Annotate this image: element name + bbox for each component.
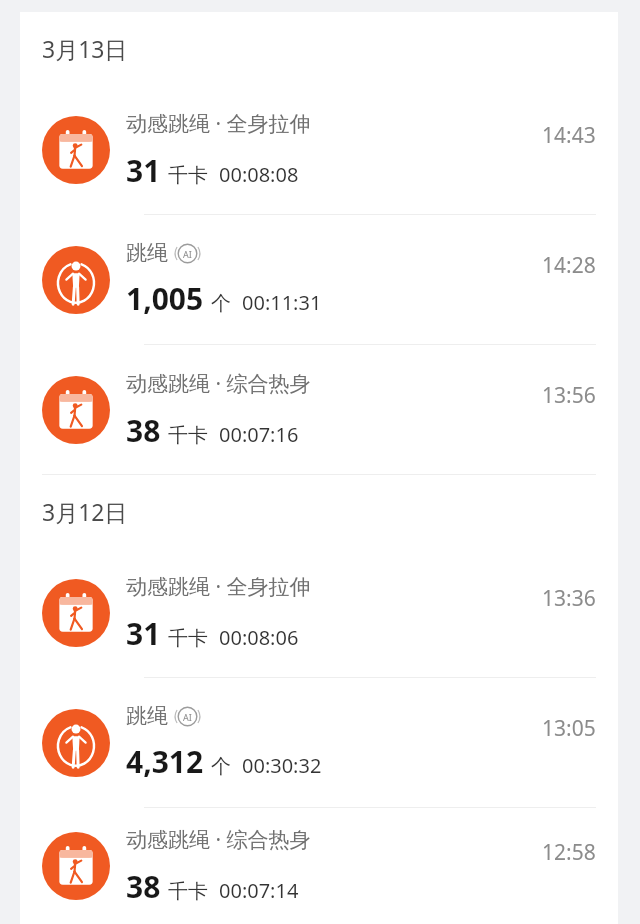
other: Workout — [42, 832, 110, 900]
other: Workout — [42, 579, 110, 647]
staticText: 个 — [211, 291, 231, 316]
staticText: 动感跳绳 · 综合热身 — [126, 825, 311, 854]
staticText: 00:11:31 — [242, 289, 322, 316]
button[interactable]: Workout — [20, 548, 618, 677]
staticText: 动感跳绳 · 综合热身 — [126, 369, 311, 398]
staticText: 千卡 — [168, 423, 208, 448]
staticText: 千卡 — [168, 626, 208, 651]
staticText: AI — [183, 711, 192, 723]
button[interactable]: Workout — [20, 85, 618, 214]
staticText: 00:08:06 — [219, 624, 299, 651]
other: Workout — [42, 116, 110, 184]
staticText: 13:36 — [542, 584, 596, 613]
other: Jump rope — [42, 709, 110, 777]
staticText: 3月13日 — [42, 33, 128, 64]
staticText: 00:07:14 — [219, 877, 299, 904]
staticText: 38 — [126, 866, 161, 907]
button[interactable]: Workout — [20, 808, 618, 924]
staticText: 个 — [211, 754, 231, 779]
button[interactable]: Jump rope — [20, 678, 618, 807]
staticText: 动感跳绳 · 全身拉伸 — [126, 572, 311, 601]
button[interactable]: Workout — [20, 345, 618, 474]
staticText: 14:28 — [542, 251, 596, 280]
staticText: 3月12日 — [42, 496, 128, 527]
staticText: 31 — [126, 150, 161, 191]
other: Jump rope — [42, 246, 110, 314]
staticText: 1,005 — [126, 278, 204, 319]
staticText: 跳绳 — [126, 240, 168, 266]
staticText: 31 — [126, 613, 161, 654]
staticText: 4,312 — [126, 741, 204, 782]
staticText: 00:07:16 — [219, 421, 299, 448]
staticText: 12:58 — [542, 838, 596, 867]
staticText: 00:30:32 — [242, 752, 322, 779]
staticText: 13:56 — [542, 381, 596, 410]
staticText: 38 — [126, 410, 161, 451]
staticText: 跳绳 — [126, 703, 168, 729]
staticText: 千卡 — [168, 163, 208, 188]
staticText: 14:43 — [542, 121, 596, 150]
staticText: 00:08:08 — [219, 161, 299, 188]
staticText: 千卡 — [168, 879, 208, 904]
button[interactable]: Jump rope — [20, 215, 618, 344]
staticText: 13:05 — [542, 714, 596, 743]
other: Workout — [42, 376, 110, 444]
staticText: 动感跳绳 · 全身拉伸 — [126, 109, 311, 138]
staticText: AI — [183, 248, 192, 260]
